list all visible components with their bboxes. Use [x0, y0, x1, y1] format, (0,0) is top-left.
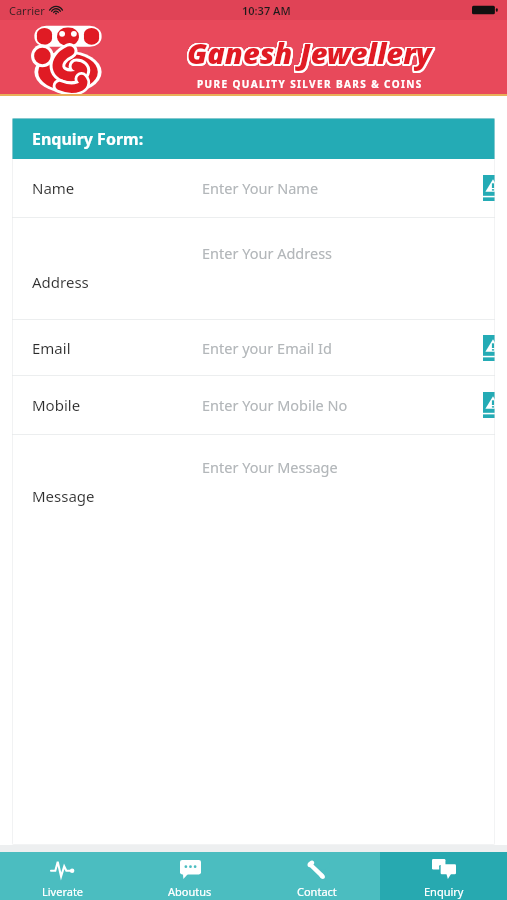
other: About us — [180, 860, 201, 879]
staticText: Enter Your Message — [202, 457, 338, 477]
button[interactable]: Enquiry — [380, 852, 507, 900]
staticText: Ganesh Jewellery — [188, 35, 433, 74]
button[interactable]: Contact — [253, 852, 380, 900]
staticText: Aboutus — [168, 884, 212, 899]
other: Live rate — [51, 860, 75, 878]
other: Enquiry — [432, 859, 456, 879]
staticText: Ganesh Jewellery — [187, 33, 432, 72]
staticText: Ganesh Jewellery — [188, 32, 433, 71]
staticText: Ganesh Jewellery — [186, 34, 431, 73]
staticText: Ganesh Jewellery — [186, 32, 431, 71]
staticText: Enter Your Name — [202, 178, 319, 198]
other: Required field warning — [483, 175, 495, 201]
staticText: Ganesh Jewellery — [186, 33, 431, 72]
staticText: Enter Your Address — [202, 243, 333, 263]
staticText: Enter your Email Id — [202, 338, 332, 358]
staticText: Ganesh Jewellery — [186, 32, 431, 71]
staticText: Ganesh Jewellery — [186, 34, 431, 73]
staticText: Ganesh Jewellery — [186, 35, 431, 74]
staticText: Ganesh Jewellery — [187, 32, 432, 71]
button[interactable]: Email — [12, 320, 495, 375]
staticText: Ganesh Jewellery — [189, 32, 434, 71]
staticText: Ganesh Jewellery — [188, 34, 433, 73]
staticText: Enquiry Form: — [32, 128, 144, 150]
staticText: Ganesh Jewellery — [187, 35, 432, 74]
button[interactable]: Message — [12, 435, 495, 531]
staticText: Enter Your Mobile No — [202, 395, 348, 415]
button[interactable]: Address — [12, 218, 495, 319]
staticText: Mobile — [32, 395, 81, 415]
other: Required field warning — [483, 335, 495, 361]
staticText: Enquiry — [424, 884, 464, 899]
staticText: Ganesh Jewellery — [186, 32, 431, 71]
staticText: Ganesh Jewellery — [188, 33, 433, 72]
staticText: Liverate — [42, 884, 84, 899]
staticText: 10:37 AM — [242, 3, 291, 18]
button[interactable]: Mobile — [12, 376, 495, 434]
staticText: PURE QUALITY SILVER BARS & COINS — [197, 77, 423, 91]
staticText: Address — [32, 272, 89, 292]
other: Required field warning — [483, 392, 495, 418]
staticText: Ganesh Jewellery — [187, 32, 432, 71]
staticText: Email — [32, 338, 71, 358]
staticText: Ganesh Jewellery — [186, 33, 431, 72]
button[interactable]: Name — [12, 159, 495, 217]
staticText: Message — [32, 486, 95, 506]
staticText: Ganesh Jewellery — [188, 32, 433, 71]
staticText: Ganesh Jewellery — [189, 33, 434, 72]
other: Ganesh Jewellery logo — [26, 23, 110, 93]
staticText: Name — [32, 178, 75, 198]
button[interactable]: Live rate — [0, 852, 126, 900]
other: Contact — [306, 858, 328, 880]
staticText: Ganesh Jewellery — [189, 34, 434, 73]
button[interactable]: About us — [126, 852, 253, 900]
staticText: Carrier — [9, 3, 45, 18]
staticText: Contact — [297, 884, 337, 899]
staticText: Ganesh Jewellery — [187, 34, 432, 73]
